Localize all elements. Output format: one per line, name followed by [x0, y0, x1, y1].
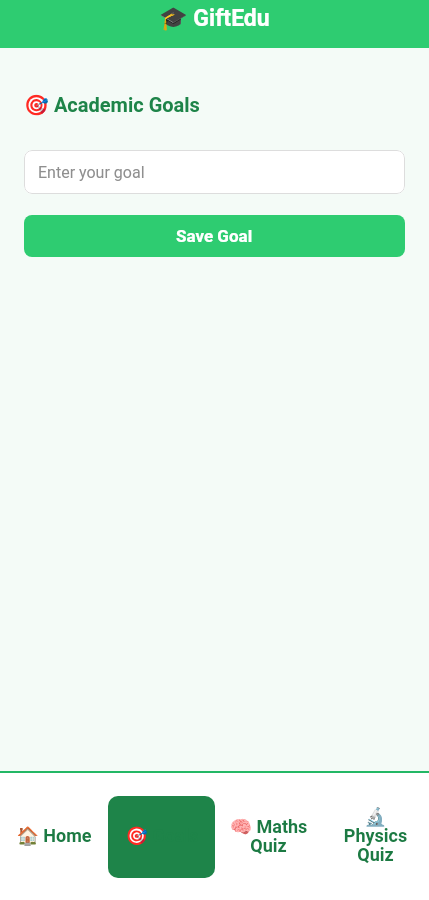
button[interactable]: Home [0, 796, 108, 878]
button[interactable]: Maths Quiz [215, 796, 322, 878]
button[interactable]: Physics Quiz [322, 796, 429, 878]
button[interactable]: Academic Goals [108, 796, 215, 878]
button[interactable]: Save Goal [24, 215, 405, 257]
staticText: Save Goal [176, 226, 253, 246]
button[interactable]: Enter your goal [24, 150, 405, 194]
staticText: 🧠 Maths Quiz [229, 816, 308, 856]
staticText: 🔬 Physics Quiz [336, 806, 415, 865]
staticText: 🎓 GiftEdu [159, 5, 270, 32]
staticText: 🎯 Goals [125, 825, 199, 846]
staticText: 🏠 Home [16, 825, 92, 846]
staticText: 🎯 Academic Goals [24, 93, 200, 116]
staticText: Enter your goal [38, 163, 145, 182]
